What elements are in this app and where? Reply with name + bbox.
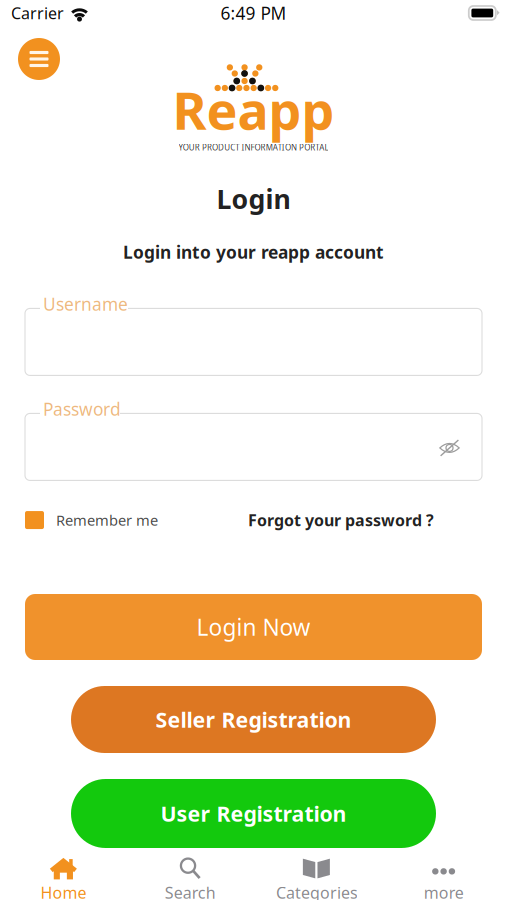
button[interactable]: Menu xyxy=(18,38,60,80)
staticText: Carrier xyxy=(11,2,64,24)
button[interactable]: Home xyxy=(0,848,127,900)
staticText: 6:49 PM xyxy=(220,1,286,24)
button[interactable]: Categories xyxy=(253,848,380,900)
staticText: Remember me xyxy=(56,510,158,530)
staticText: Seller Registration xyxy=(155,705,351,734)
staticText: Categories xyxy=(276,882,358,900)
staticText: User Registration xyxy=(160,799,346,828)
staticText: Login xyxy=(216,181,290,216)
staticText: Search xyxy=(165,882,216,900)
button[interactable]: Login Now xyxy=(25,594,482,660)
button[interactable]: Remember me xyxy=(25,510,158,530)
staticText: Password xyxy=(43,397,121,420)
staticText: Login Now xyxy=(196,612,310,642)
button[interactable]: Seller Registration xyxy=(71,686,436,753)
button[interactable]: more xyxy=(380,848,507,900)
button[interactable]: User Registration xyxy=(71,779,436,848)
staticText: Forgot your password ? xyxy=(248,509,434,531)
button[interactable]: Search xyxy=(127,848,254,900)
staticText: Reapp xyxy=(172,75,334,144)
staticText: YOUR PRODUCT INFORMATION PORTAL xyxy=(179,142,328,153)
staticText: Home xyxy=(40,882,86,900)
staticText: Username xyxy=(43,292,128,315)
staticText: Login into your reapp account xyxy=(123,240,384,263)
staticText: more xyxy=(424,882,464,900)
button[interactable]: Forgot your password ? xyxy=(248,509,434,531)
